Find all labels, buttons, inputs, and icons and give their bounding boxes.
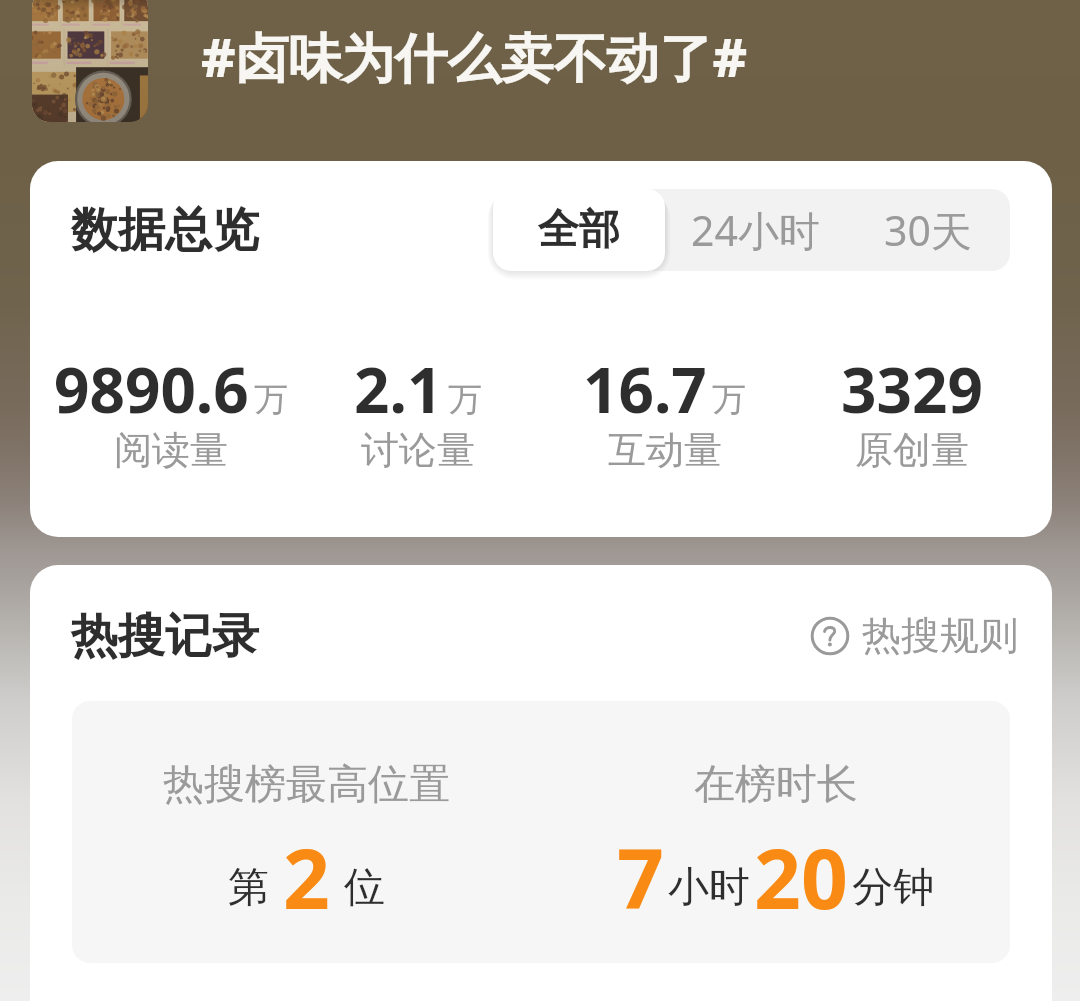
staticText: 3329 bbox=[841, 347, 983, 431]
button[interactable]: 24小时 bbox=[665, 189, 845, 271]
staticText: 16.7 bbox=[583, 347, 707, 431]
button[interactable]: 3329 bbox=[788, 347, 1035, 479]
staticText: 互动量 bbox=[608, 426, 722, 474]
button[interactable]: 9890.6 bbox=[47, 347, 294, 479]
staticText: 20 bbox=[754, 821, 848, 933]
staticText: 热搜规则 bbox=[862, 611, 1018, 660]
staticText: 万 bbox=[448, 378, 482, 421]
staticText: 7 bbox=[617, 821, 664, 933]
staticText: 9890.6 bbox=[54, 347, 249, 431]
staticText: 30天 bbox=[884, 202, 972, 258]
button[interactable]: 全部 bbox=[493, 189, 665, 271]
staticText: 热搜记录 bbox=[71, 607, 259, 666]
staticText: 万 bbox=[712, 378, 746, 421]
staticText: 小时 bbox=[668, 862, 750, 914]
staticText: 位 bbox=[344, 862, 385, 914]
staticText: #卤味为什么卖不动了# bbox=[201, 20, 748, 92]
staticText: 热搜榜最高位置 bbox=[163, 759, 450, 811]
button[interactable]: 16.7 bbox=[541, 347, 788, 479]
button[interactable]: 2.1 bbox=[294, 347, 541, 479]
button[interactable]: 30天 bbox=[845, 189, 1010, 271]
staticText: 在榜时长 bbox=[694, 759, 858, 811]
staticText: 第 bbox=[228, 862, 269, 914]
staticText: 全部 bbox=[538, 204, 620, 256]
button[interactable]: 话题封面图 bbox=[32, 0, 148, 122]
staticText: 阅读量 bbox=[114, 426, 228, 474]
staticText: 原创量 bbox=[855, 426, 969, 474]
button[interactable]: 热搜规则 bbox=[810, 611, 1018, 660]
staticText: 分钟 bbox=[852, 862, 934, 914]
staticText: 数据总览 bbox=[71, 201, 259, 260]
staticText: 24小时 bbox=[691, 202, 820, 258]
staticText: 万 bbox=[254, 378, 288, 421]
staticText: 2.1 bbox=[354, 347, 443, 431]
staticText: 2 bbox=[283, 821, 330, 933]
staticText: 讨论量 bbox=[361, 426, 475, 474]
